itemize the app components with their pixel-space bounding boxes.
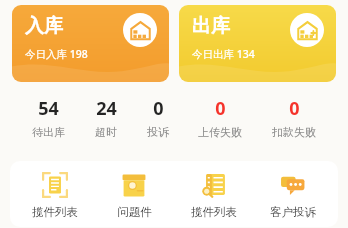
- button[interactable]: 0: [194, 96, 246, 139]
- button[interactable]: 24: [91, 96, 121, 139]
- staticText: 揽件列表: [32, 205, 78, 219]
- staticText: 入库: [25, 14, 63, 38]
- staticText: 24: [96, 96, 117, 121]
- button[interactable]: 0: [143, 96, 173, 139]
- staticText: 今日入库 198: [25, 47, 88, 61]
- button[interactable]: 入库: [12, 5, 169, 82]
- staticText: 54: [38, 96, 59, 121]
- staticText: 投诉: [147, 125, 169, 139]
- other: 出库: [290, 13, 324, 47]
- staticText: 客户投诉: [270, 205, 316, 219]
- button[interactable]: 出库: [179, 5, 336, 82]
- staticText: 扣款失败: [272, 125, 316, 139]
- button[interactable]: 问题件: [95, 161, 173, 227]
- staticText: 出库: [192, 14, 230, 38]
- staticText: 问题件: [117, 205, 152, 219]
- staticText: 0: [153, 96, 164, 121]
- staticText: 待出库: [32, 125, 65, 139]
- staticText: 上传失败: [198, 125, 242, 139]
- button[interactable]: 揽件列表: [16, 161, 94, 227]
- button[interactable]: 54: [28, 96, 69, 139]
- staticText: 今日出库 134: [192, 47, 255, 61]
- staticText: 超时: [95, 125, 117, 139]
- other: 入库: [123, 13, 157, 47]
- button[interactable]: 0: [268, 96, 320, 139]
- staticText: 0: [289, 96, 300, 121]
- staticText: 揽件列表: [191, 205, 237, 219]
- button[interactable]: 客户投诉: [254, 161, 332, 227]
- button[interactable]: 揽件列表: [175, 161, 253, 227]
- staticText: 0: [215, 96, 226, 121]
